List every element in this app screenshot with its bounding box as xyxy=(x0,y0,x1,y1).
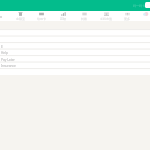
button[interactable]: Credit card xyxy=(30,11,52,21)
button[interactable]: Transfer xyxy=(73,11,95,21)
button[interactable]: Insurance xyxy=(0,62,150,69)
button[interactable]: Pay Later xyxy=(0,56,150,63)
staticText: Help xyxy=(1,51,8,55)
staticText: 转账 xyxy=(81,17,87,21)
staticText: Insurance xyxy=(1,64,16,68)
button[interactable]: E xyxy=(0,43,150,50)
button[interactable]: Huabei xyxy=(52,11,74,21)
button[interactable]: More services xyxy=(143,12,149,16)
button[interactable]: Mobile top up xyxy=(95,11,117,21)
staticText: 信用卡 xyxy=(37,17,46,21)
staticText: 余额宝 xyxy=(16,17,25,21)
staticText: 花呗 xyxy=(60,17,66,21)
staticText: 手机充值 xyxy=(100,17,112,21)
staticText: E xyxy=(1,45,3,49)
button[interactable]: Help xyxy=(0,49,150,56)
staticText: 扫一扫 付款 xyxy=(133,4,149,8)
button[interactable]: Yu'e Bao xyxy=(9,11,31,21)
button[interactable]: Menu xyxy=(145,2,150,8)
button[interactable]: More xyxy=(116,11,138,21)
staticText: 更多 xyxy=(124,17,130,21)
staticText: Pay Later xyxy=(1,58,15,62)
